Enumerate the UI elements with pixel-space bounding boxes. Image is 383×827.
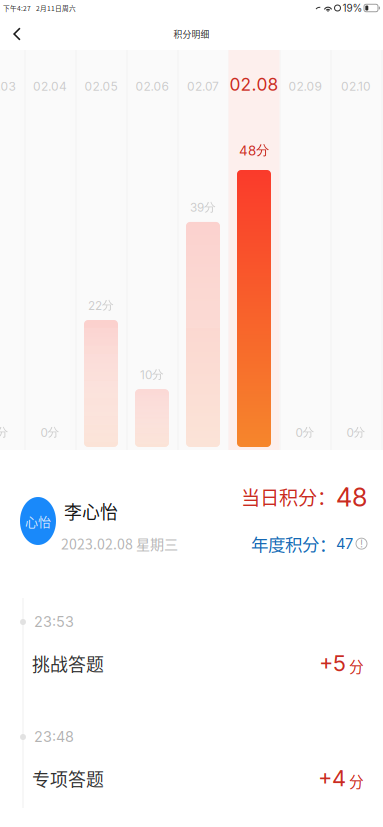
staticText: 0分 xyxy=(0,425,8,440)
staticText: 47 xyxy=(336,535,353,552)
staticText: 分 xyxy=(349,655,364,676)
staticText: 10分 xyxy=(140,367,164,382)
staticText: 下午4:27 xyxy=(3,3,31,13)
staticText: 02.08 xyxy=(229,74,278,95)
staticText: +5 xyxy=(319,650,346,676)
staticText: 02.09 xyxy=(288,79,321,93)
staticText: 挑战答题 xyxy=(32,651,104,676)
staticText: 0分 xyxy=(346,425,365,440)
staticText: 年度积分： xyxy=(251,531,336,556)
staticText: 02.03 xyxy=(0,79,15,93)
staticText: 2月11日周六 xyxy=(36,3,76,13)
staticText: 分 xyxy=(349,770,364,791)
staticText: 39分 xyxy=(190,200,216,215)
staticText: 23:48 xyxy=(34,728,74,745)
staticText: 22分 xyxy=(88,298,114,313)
staticText: 李心怡 xyxy=(64,498,118,524)
staticText: 积分明细 xyxy=(173,28,209,40)
staticText: 02.07 xyxy=(187,79,219,93)
staticText: 0分 xyxy=(295,425,314,440)
staticText: 专项答题 xyxy=(32,766,104,791)
staticText: 02.10 xyxy=(341,79,371,93)
staticText: 02.06 xyxy=(135,79,168,93)
staticText: 19% xyxy=(342,2,362,14)
staticText: ! xyxy=(360,537,363,550)
staticText: +4 xyxy=(318,765,346,791)
staticText: 48分 xyxy=(239,142,269,159)
staticText: 当日积分： xyxy=(241,483,336,511)
button[interactable]: 23:53 xyxy=(0,606,383,706)
button[interactable]: 23:48 xyxy=(0,721,383,821)
staticText: 02.05 xyxy=(84,79,117,93)
staticText: 02.04 xyxy=(33,79,67,93)
staticText: 心怡 xyxy=(25,511,51,530)
staticText: 23:53 xyxy=(34,613,74,630)
button[interactable]: Back xyxy=(0,19,34,49)
staticText: 0分 xyxy=(40,425,59,440)
staticText: 2023.02.08 星期三 xyxy=(61,533,178,553)
staticText: 48 xyxy=(336,482,367,513)
